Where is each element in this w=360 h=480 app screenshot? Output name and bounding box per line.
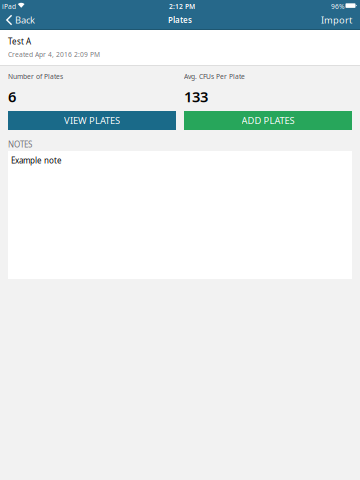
staticText: Avg. CFUs Per Plate xyxy=(184,72,245,81)
staticText: Number of Plates xyxy=(8,72,63,81)
button[interactable]: VIEW PLATES xyxy=(8,111,176,130)
staticText: Created Apr 4, 2016 2:09 PM xyxy=(8,50,100,59)
staticText: NOTES xyxy=(8,139,32,150)
staticText: iPad xyxy=(2,2,16,11)
staticText: 96% xyxy=(331,2,345,11)
staticText: 2:12 PM xyxy=(169,2,195,11)
staticText: VIEW PLATES xyxy=(64,114,120,127)
staticText: Example note xyxy=(11,155,62,166)
staticText: 133 xyxy=(184,87,208,106)
staticText: Plates xyxy=(168,15,192,25)
staticText: Import xyxy=(321,14,352,26)
staticText: Test A xyxy=(8,36,31,47)
staticText: ADD PLATES xyxy=(241,114,294,127)
button[interactable]: Import xyxy=(313,11,360,29)
button[interactable]: Back xyxy=(0,11,43,29)
button[interactable]: ADD PLATES xyxy=(184,111,352,130)
staticText: 6 xyxy=(8,87,16,106)
staticText: Back xyxy=(15,14,35,26)
